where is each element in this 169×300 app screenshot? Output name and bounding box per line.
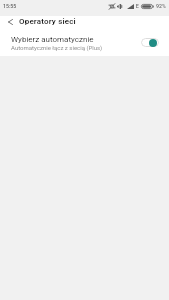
staticText: Wybierz automatycznie [11, 35, 94, 44]
staticText: Operatory sieci [19, 17, 76, 26]
button[interactable]: Automatic network selection toggle [141, 38, 159, 47]
staticText: 92% [156, 3, 166, 9]
button[interactable]: Wybierz automatycznie [0, 31, 169, 56]
button[interactable]: Back [0, 16, 19, 31]
staticText: Automatycznie łącz z siecią (Plus) [11, 44, 103, 51]
staticText: E [136, 3, 139, 9]
staticText: 15:55 [3, 3, 17, 9]
